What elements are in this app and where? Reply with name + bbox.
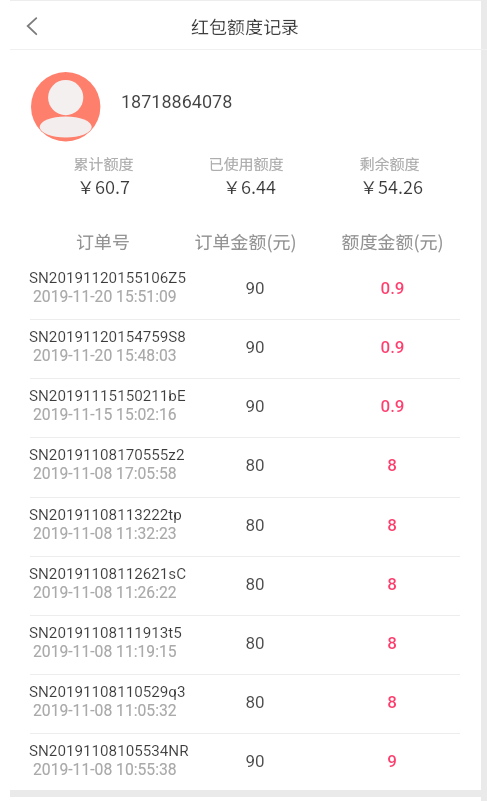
button[interactable]: SN20191108170555z2 bbox=[0, 438, 487, 497]
staticText: SN20191108110529q3 bbox=[29, 683, 186, 701]
staticText: SN20191108105534NR bbox=[29, 742, 189, 760]
staticText: 9 bbox=[387, 751, 397, 771]
staticText: SN20191108170555z2 bbox=[29, 446, 185, 464]
staticText: 2019-11-20 15:48:03 bbox=[33, 346, 177, 364]
staticText: SN20191108111913t5 bbox=[29, 624, 182, 642]
staticText: 8 bbox=[387, 455, 397, 475]
staticText: 剩余额度 bbox=[359, 153, 420, 175]
staticText: 8 bbox=[387, 692, 397, 712]
staticText: 8 bbox=[387, 633, 397, 653]
button[interactable]: SN20191108105534NR bbox=[0, 734, 487, 793]
staticText: 累计额度 bbox=[73, 153, 134, 175]
staticText: 订单金额(元) bbox=[194, 228, 297, 254]
staticText: ￥54.26 bbox=[360, 173, 423, 199]
staticText: 订单号 bbox=[76, 228, 130, 254]
staticText: 80 bbox=[245, 455, 265, 475]
button[interactable]: SN20191108111913t5 bbox=[0, 616, 487, 675]
staticText: 18718864078 bbox=[121, 91, 233, 112]
staticText: 80 bbox=[245, 574, 265, 594]
staticText: SN20191120154759S8 bbox=[29, 328, 186, 346]
staticText: 0.9 bbox=[380, 396, 405, 416]
staticText: 90 bbox=[245, 396, 265, 416]
staticText: 8 bbox=[387, 574, 397, 594]
button[interactable]: SN20191108113222tp bbox=[0, 498, 487, 557]
staticText: 2019-11-08 11:32:23 bbox=[33, 524, 177, 542]
button[interactable]: SN20191108110529q3 bbox=[0, 675, 487, 734]
button[interactable]: SN20191120155106Z5 bbox=[0, 261, 487, 320]
staticText: ￥60.7 bbox=[77, 173, 130, 199]
staticText: 2019-11-08 10:55:38 bbox=[33, 760, 177, 778]
staticText: 90 bbox=[245, 337, 265, 357]
staticText: 0.9 bbox=[380, 278, 405, 298]
button[interactable]: Back bbox=[14, 8, 50, 44]
staticText: 2019-11-08 11:26:22 bbox=[33, 583, 177, 601]
staticText: 已使用额度 bbox=[208, 153, 284, 175]
button[interactable]: SN20191108112621sC bbox=[0, 557, 487, 616]
button[interactable]: SN20191115150211bE bbox=[0, 379, 487, 438]
staticText: 0.9 bbox=[380, 337, 405, 357]
staticText: 2019-11-20 15:51:09 bbox=[33, 287, 177, 305]
staticText: SN20191115150211bE bbox=[29, 387, 186, 405]
staticText: 2019-11-08 17:05:58 bbox=[33, 464, 177, 482]
staticText: 2019-11-08 11:19:15 bbox=[33, 642, 177, 660]
staticText: SN20191108113222tp bbox=[29, 506, 182, 524]
button[interactable]: SN20191120154759S8 bbox=[0, 320, 487, 379]
staticText: 额度金额(元) bbox=[341, 228, 444, 254]
staticText: 90 bbox=[245, 278, 265, 298]
staticText: 8 bbox=[387, 515, 397, 535]
staticText: ￥6.44 bbox=[223, 173, 276, 199]
staticText: 80 bbox=[245, 633, 265, 653]
staticText: 红包额度记录 bbox=[191, 13, 299, 39]
staticText: 90 bbox=[245, 751, 265, 771]
staticText: 2019-11-15 15:02:16 bbox=[33, 405, 177, 423]
staticText: SN20191108112621sC bbox=[29, 565, 187, 583]
staticText: 2019-11-08 11:05:32 bbox=[33, 701, 177, 719]
staticText: 80 bbox=[245, 692, 265, 712]
staticText: SN20191120155106Z5 bbox=[29, 269, 186, 287]
button[interactable]: 18718864078 bbox=[20, 60, 260, 152]
staticText: 80 bbox=[245, 515, 265, 535]
